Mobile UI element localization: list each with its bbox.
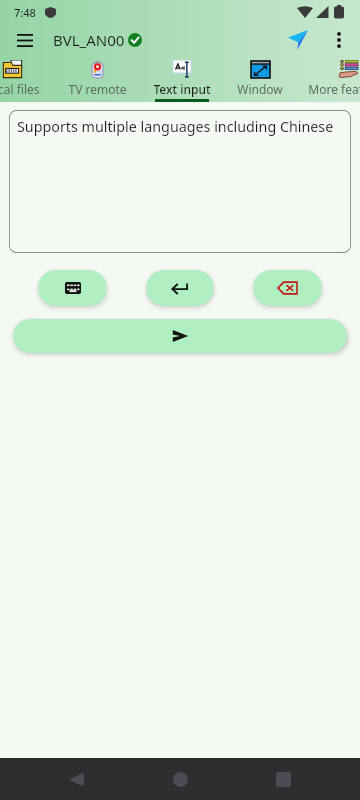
staticText: Window xyxy=(237,81,283,97)
staticText: More features xyxy=(308,81,360,97)
staticText: BVL_AN00 xyxy=(53,30,125,50)
button[interactable]: Window xyxy=(224,60,296,102)
button[interactable]: Key xyxy=(38,270,107,306)
button[interactable]: Supports multiple languages including Ch… xyxy=(9,110,351,253)
button[interactable]: Send xyxy=(282,24,314,56)
button[interactable]: Text input xyxy=(140,60,224,102)
staticText: 7:48 xyxy=(14,5,36,20)
staticText: Supports multiple languages including Ch… xyxy=(17,117,334,136)
staticText: Local files xyxy=(0,81,40,97)
button[interactable]: Send xyxy=(13,319,347,353)
button[interactable]: Home xyxy=(158,758,202,800)
staticText: TV remote xyxy=(68,81,127,97)
button[interactable]: TV remote xyxy=(54,60,140,102)
button[interactable]: Menu xyxy=(9,24,41,56)
button[interactable]: Back xyxy=(54,758,98,800)
button[interactable]: Recents xyxy=(261,758,305,800)
button[interactable]: More options xyxy=(323,24,355,56)
button[interactable]: More features xyxy=(297,60,360,102)
button[interactable]: Key xyxy=(253,270,322,306)
button[interactable]: Key xyxy=(146,270,214,306)
staticText: Text input xyxy=(153,81,211,97)
button[interactable]: Local files xyxy=(0,60,54,102)
